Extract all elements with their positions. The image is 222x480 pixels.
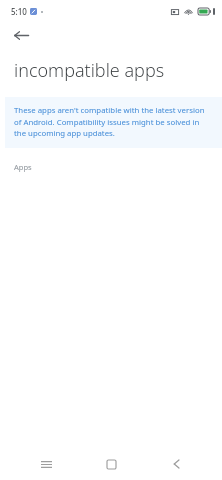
staticText: incompatible apps <box>14 58 165 83</box>
staticText: 5:10 <box>11 6 27 17</box>
staticText: These apps aren't compatible with the la… <box>14 105 212 138</box>
button[interactable]: Back <box>161 449 191 479</box>
button[interactable]: Recent apps <box>31 449 61 479</box>
staticText: Apps <box>14 162 32 172</box>
button[interactable]: Back <box>8 22 34 48</box>
button[interactable]: Home <box>96 449 126 479</box>
